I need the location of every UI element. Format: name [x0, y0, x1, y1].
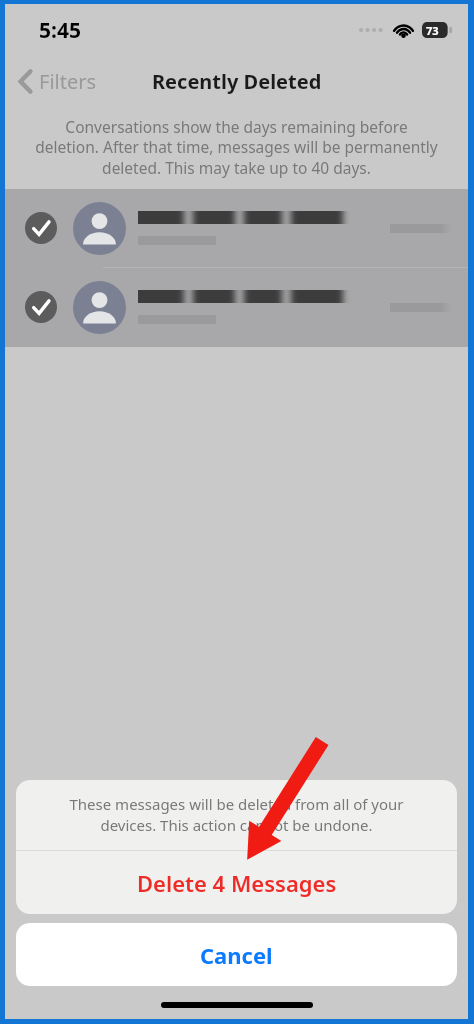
staticText: These messages will be deleted from all …: [42, 794, 431, 836]
button[interactable]: [5, 189, 468, 267]
staticText: 5:45: [39, 16, 81, 45]
button[interactable]: [5, 268, 468, 346]
staticText: 73: [426, 23, 439, 38]
button[interactable]: Cancel: [16, 923, 457, 986]
staticText: Filters: [39, 68, 97, 95]
staticText: Delete 4 Messages: [137, 868, 337, 898]
staticText: Cancel: [200, 940, 273, 970]
other: Annotation arrow pointing to Delete 4 Me…: [5, 4, 468, 1019]
staticText: Recently Deleted: [152, 68, 322, 95]
button[interactable]: Filters: [5, 62, 107, 101]
button[interactable]: Delete 4 Messages: [16, 851, 457, 914]
staticText: Conversations show the days remaining be…: [35, 116, 438, 179]
